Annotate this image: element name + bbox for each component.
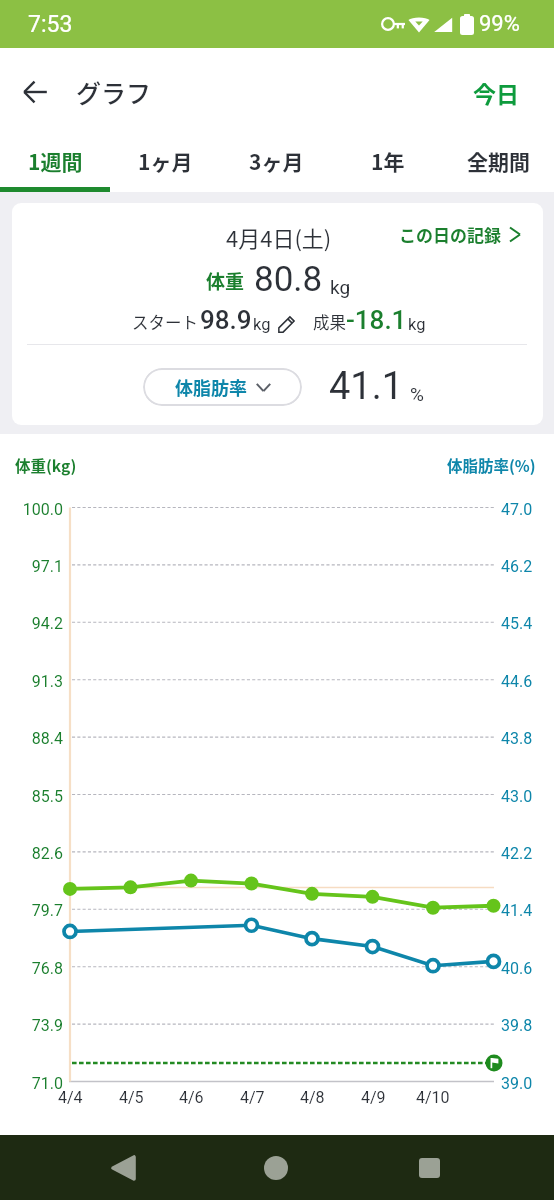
staticText: kg <box>330 276 351 298</box>
staticText: 4/10 <box>416 1088 450 1107</box>
staticText: 80.8 <box>254 259 323 300</box>
staticText: 1年 <box>371 146 405 176</box>
staticText: 46.2 <box>501 557 533 576</box>
staticText: 98.9 <box>200 305 252 335</box>
staticText: 39.0 <box>501 1074 533 1093</box>
staticText: 1ヶ月 <box>138 146 193 176</box>
staticText: 4/6 <box>179 1088 204 1107</box>
button[interactable]: 全期間 <box>443 136 554 192</box>
button[interactable]: Back <box>92 1137 154 1199</box>
staticText: 45.4 <box>501 614 533 633</box>
staticText: 99% <box>479 11 520 37</box>
button[interactable]: 今日 <box>459 66 533 119</box>
staticText: 体脂肪率(%) <box>447 454 536 476</box>
staticText: 88.4 <box>0 729 63 748</box>
staticText: -18.1 <box>346 305 407 335</box>
staticText: 3ヶ月 <box>249 146 304 176</box>
button[interactable]: Recent apps <box>398 1137 460 1199</box>
staticText: この日の記録 <box>399 222 501 247</box>
staticText: 42.2 <box>501 844 533 863</box>
staticText: 79.7 <box>0 901 63 920</box>
staticText: 43.0 <box>501 787 533 806</box>
staticText: 76.8 <box>0 959 63 978</box>
button[interactable]: Back <box>12 69 58 115</box>
staticText: 4/8 <box>300 1088 325 1107</box>
staticText: グラフ <box>76 74 152 110</box>
button[interactable]: 1ヶ月 <box>110 136 221 192</box>
staticText: 43.8 <box>501 729 533 748</box>
staticText: 73.9 <box>0 1016 63 1035</box>
button[interactable]: 1週間 <box>0 136 110 192</box>
staticText: 41.4 <box>501 901 533 920</box>
staticText: 体重 <box>206 267 245 295</box>
staticText: 41.1 <box>329 364 404 409</box>
staticText: 体重(kg) <box>15 454 77 476</box>
staticText: 今日 <box>473 76 519 109</box>
button[interactable]: 体脂肪率 <box>143 368 302 406</box>
staticText: 4/5 <box>119 1088 144 1107</box>
staticText: スタート <box>132 310 198 334</box>
staticText: 97.1 <box>0 557 63 576</box>
staticText: 85.5 <box>0 787 63 806</box>
staticText: 71.0 <box>0 1074 63 1093</box>
button[interactable]: 1年 <box>332 136 443 192</box>
staticText: 全期間 <box>467 146 530 176</box>
staticText: 100.0 <box>0 500 63 519</box>
staticText: 1週間 <box>28 146 83 176</box>
staticText: 体脂肪率 <box>175 374 247 400</box>
staticText: 4/9 <box>361 1088 386 1107</box>
staticText: 91.3 <box>0 672 63 691</box>
staticText: 4/4 <box>58 1088 83 1107</box>
staticText: 成果 <box>313 310 346 334</box>
button[interactable]: 4月4日(土) <box>12 203 543 425</box>
staticText: 40.6 <box>501 959 533 978</box>
button[interactable]: Home <box>245 1137 307 1199</box>
staticText: 7:53 <box>28 11 73 38</box>
staticText: 4月4日(土) <box>226 221 332 253</box>
staticText: 4/7 <box>240 1088 265 1107</box>
staticText: 82.6 <box>0 844 63 863</box>
staticText: % <box>410 383 424 405</box>
staticText: kg <box>408 315 426 334</box>
staticText: 94.2 <box>0 614 63 633</box>
button[interactable]: 3ヶ月 <box>221 136 332 192</box>
staticText: 39.8 <box>501 1016 533 1035</box>
staticText: 47.0 <box>501 500 533 519</box>
staticText: 44.6 <box>501 672 533 691</box>
staticText: kg <box>253 315 271 334</box>
